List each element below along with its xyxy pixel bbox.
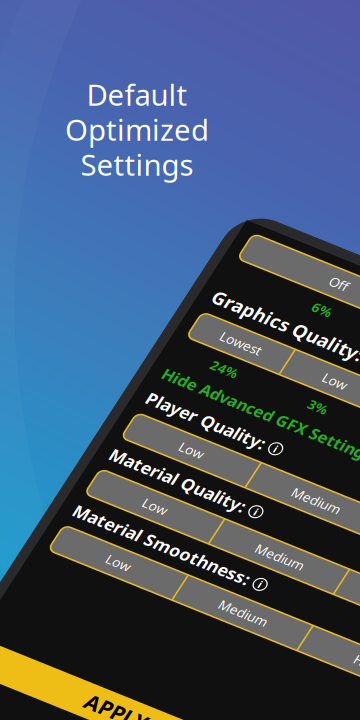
button[interactable]: Low bbox=[266, 508, 360, 538]
button[interactable]: Hide Advanced GFX Settings: bbox=[266, 383, 360, 404]
staticText: 24% bbox=[302, 358, 330, 376]
button[interactable]: Lowest bbox=[266, 321, 360, 351]
staticText: Settings bbox=[80, 145, 193, 184]
staticText: 6% bbox=[357, 265, 360, 283]
staticText: Material Smoothness: bbox=[266, 545, 360, 568]
staticText: Graphics Quality: bbox=[266, 290, 360, 314]
staticText: Hide Advanced GFX Settings: bbox=[266, 383, 360, 404]
staticText: Low bbox=[321, 582, 346, 599]
staticText: Material Quality: bbox=[266, 478, 360, 501]
staticText: Player Quality: bbox=[266, 411, 360, 434]
button[interactable]: Low bbox=[266, 441, 360, 471]
button[interactable]: Low bbox=[266, 575, 360, 605]
staticText: Low bbox=[321, 515, 346, 532]
staticText: Optimized bbox=[65, 110, 209, 149]
staticText: Lowest bbox=[294, 328, 338, 345]
staticText: Default bbox=[86, 75, 187, 114]
staticText: Low bbox=[321, 448, 346, 465]
button[interactable]: Off bbox=[266, 228, 360, 258]
